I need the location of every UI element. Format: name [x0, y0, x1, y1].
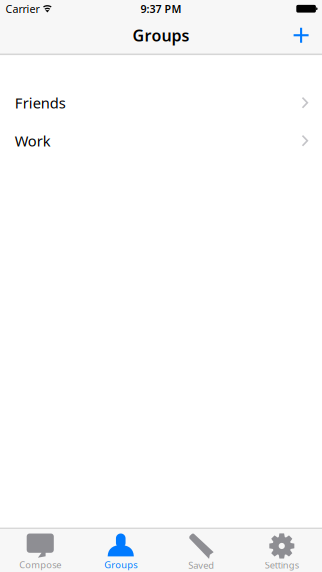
button[interactable]: Friends: [0, 84, 322, 122]
staticText: Groups: [132, 25, 189, 46]
staticText: Compose: [19, 558, 61, 571]
staticText: 9:37 PM: [140, 2, 181, 16]
button[interactable]: Compose: [0, 529, 80, 572]
staticText: Settings: [265, 559, 299, 571]
staticText: Work: [15, 131, 51, 150]
button[interactable]: Work: [0, 122, 322, 160]
button[interactable]: Settings: [241, 529, 322, 572]
staticText: Saved: [188, 559, 214, 571]
button[interactable]: Saved: [161, 529, 241, 572]
staticText: Groups: [104, 558, 137, 571]
button[interactable]: Add: [281, 17, 322, 53]
button[interactable]: Groups: [80, 529, 161, 572]
staticText: Friends: [15, 93, 66, 112]
staticText: Carrier: [5, 2, 39, 16]
